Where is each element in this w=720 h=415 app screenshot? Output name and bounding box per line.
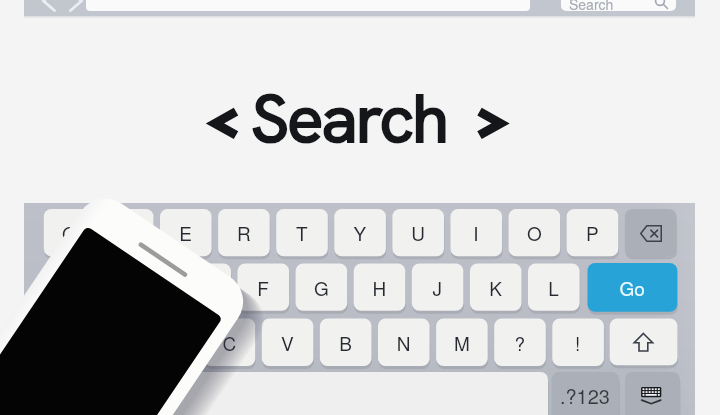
button[interactable]: Search illustration: [0, 0, 720, 415]
